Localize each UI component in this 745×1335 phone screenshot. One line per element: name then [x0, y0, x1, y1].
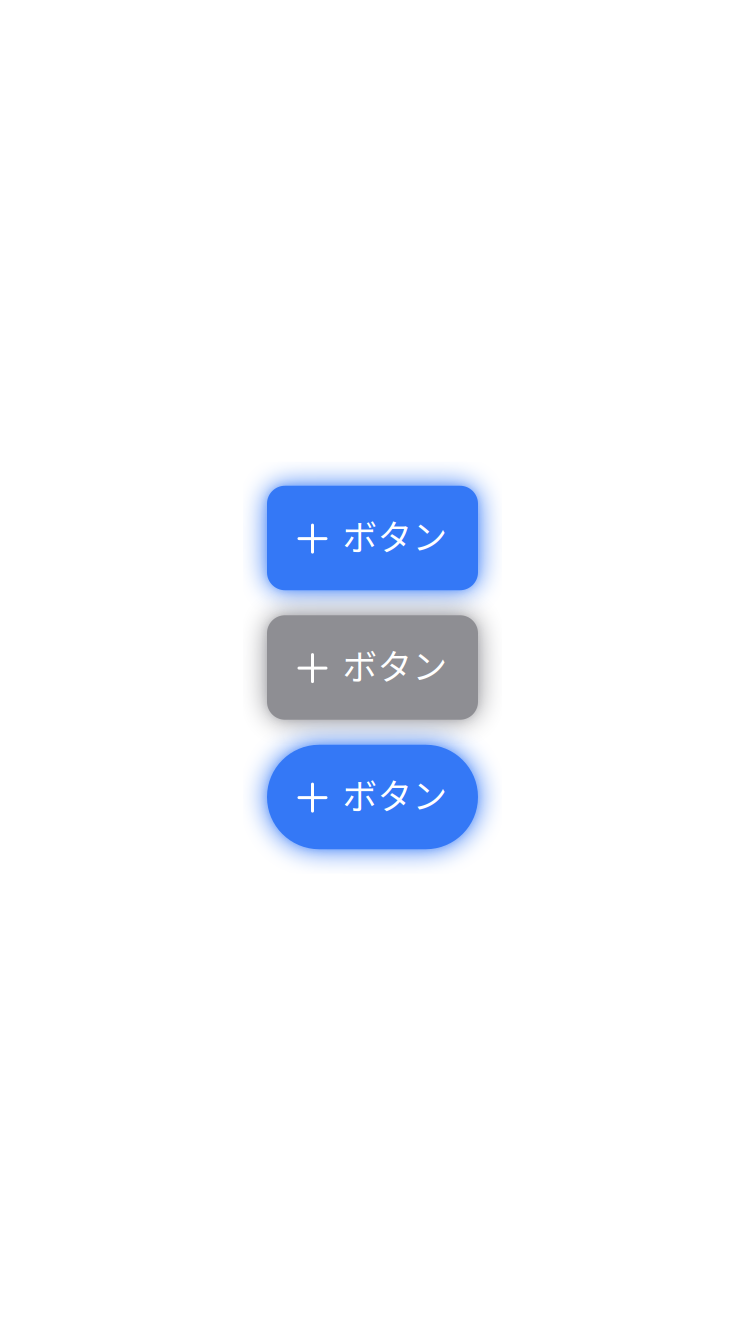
button[interactable]: ボタン: [267, 486, 478, 590]
staticText: ボタン: [342, 510, 447, 560]
staticText: ボタン: [342, 640, 447, 690]
staticText: ボタン: [342, 769, 447, 819]
button[interactable]: ボタン: [267, 615, 478, 720]
button[interactable]: ボタン: [267, 745, 478, 849]
